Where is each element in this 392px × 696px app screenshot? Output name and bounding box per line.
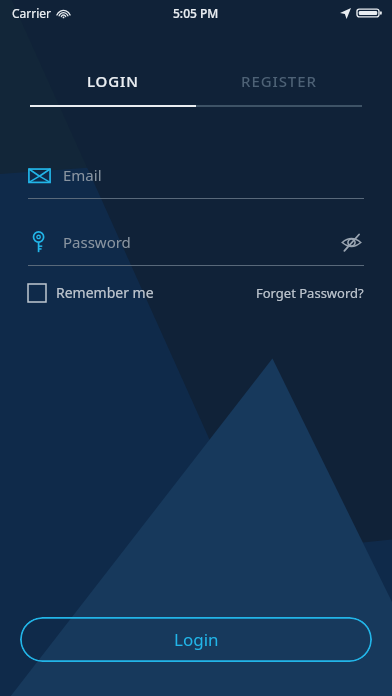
staticText: Remember me [56, 283, 154, 302]
button[interactable]: Forget Password? [256, 284, 364, 302]
staticText: Forget Password? [256, 284, 364, 302]
button[interactable]: Show password [338, 229, 364, 255]
button[interactable]: LOGIN [30, 67, 196, 95]
button[interactable]: Remember me [28, 283, 154, 302]
button[interactable]: REGISTER [196, 67, 362, 95]
staticText: Carrier [12, 5, 52, 21]
button[interactable]: Login [20, 617, 372, 662]
staticText: LOGIN [87, 71, 139, 91]
staticText: 5:05 PM [173, 5, 219, 21]
staticText: Email [63, 165, 102, 185]
staticText: Password [63, 232, 131, 252]
staticText: Login [174, 628, 219, 651]
staticText: REGISTER [241, 71, 317, 91]
